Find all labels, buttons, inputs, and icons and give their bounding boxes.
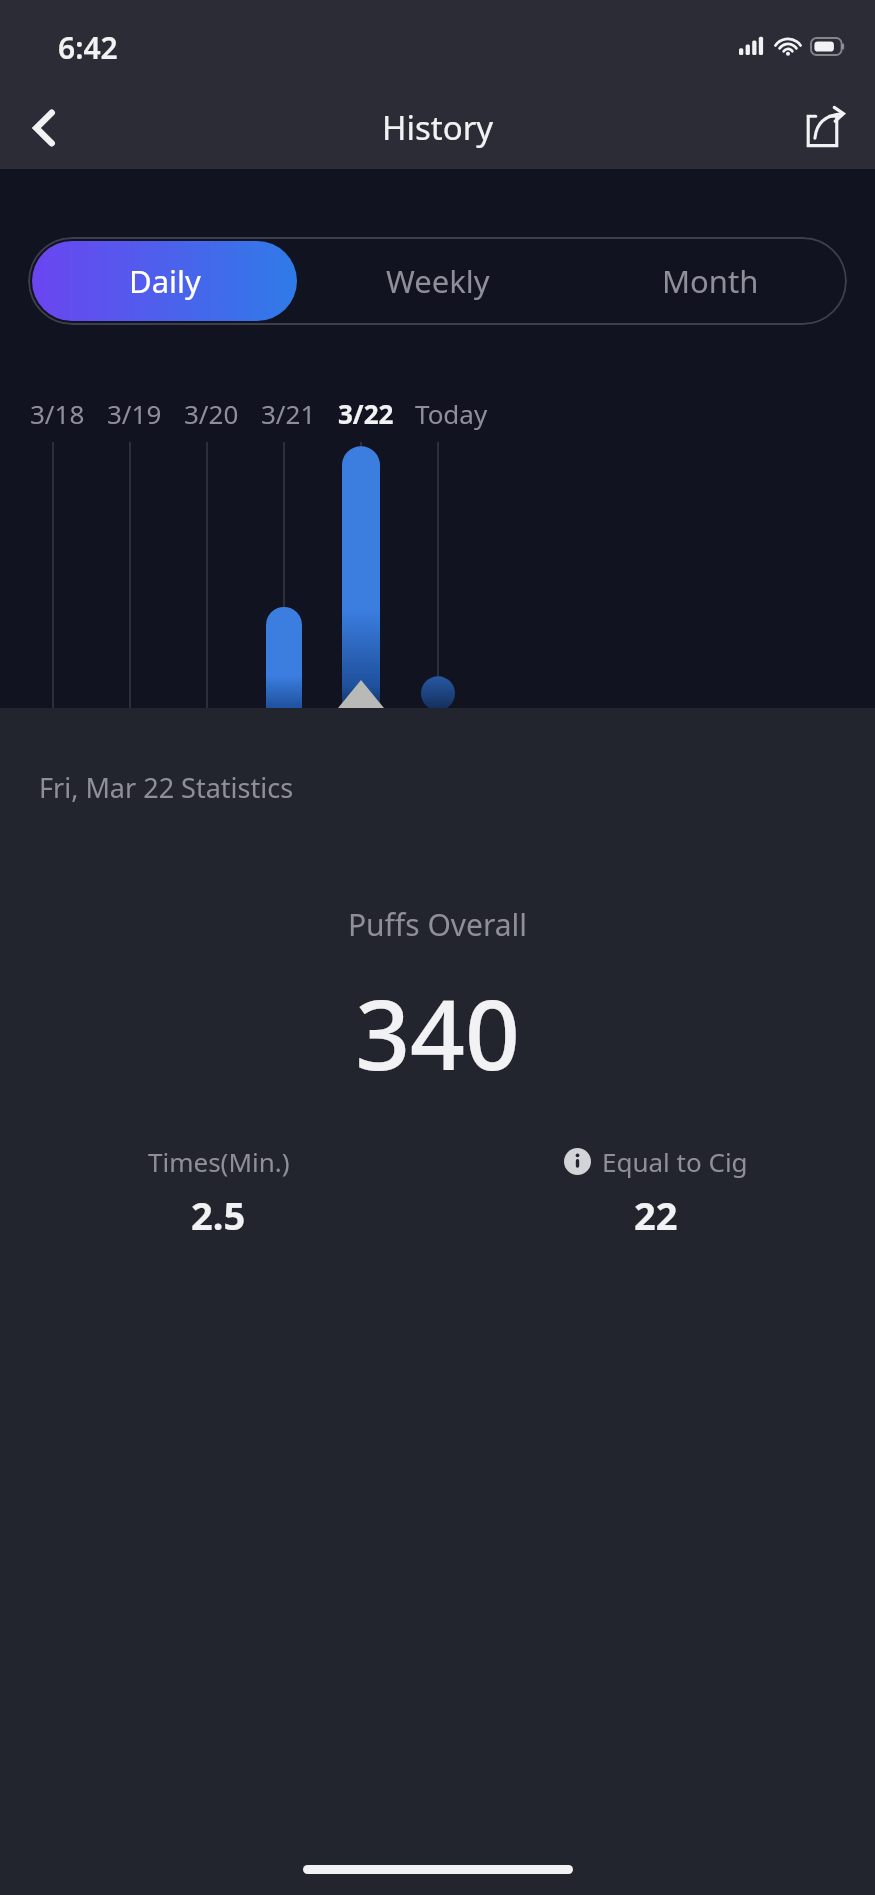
staticText: Times(Min.) — [148, 1144, 290, 1179]
staticText: 340 — [0, 967, 875, 1098]
staticText: Fri, Mar 22 Statistics — [39, 769, 294, 806]
staticText: 22 — [634, 1189, 678, 1241]
staticText: 3/19 — [107, 396, 162, 431]
button[interactable]: Month — [574, 237, 847, 325]
staticText: 3/20 — [184, 396, 239, 431]
button[interactable]: Equal to Cig — [564, 1144, 748, 1179]
button[interactable]: Daily — [32, 241, 297, 321]
staticText: Month — [662, 260, 759, 302]
staticText: Equal to Cig — [602, 1144, 748, 1179]
staticText: Daily — [129, 260, 201, 302]
staticText: 3/18 — [30, 396, 85, 431]
staticText: Today — [415, 396, 488, 431]
button[interactable]: Back — [14, 97, 76, 159]
staticText: 3/21 — [261, 396, 316, 431]
button[interactable]: Weekly — [301, 237, 574, 325]
staticText: 2.5 — [191, 1189, 246, 1241]
staticText: Puffs Overall — [0, 904, 875, 945]
staticText: Weekly — [386, 260, 490, 302]
staticText: 6:42 — [58, 27, 118, 68]
button[interactable]: Share — [793, 96, 857, 160]
staticText: History — [382, 105, 494, 150]
staticText: 3/22 — [338, 396, 394, 431]
